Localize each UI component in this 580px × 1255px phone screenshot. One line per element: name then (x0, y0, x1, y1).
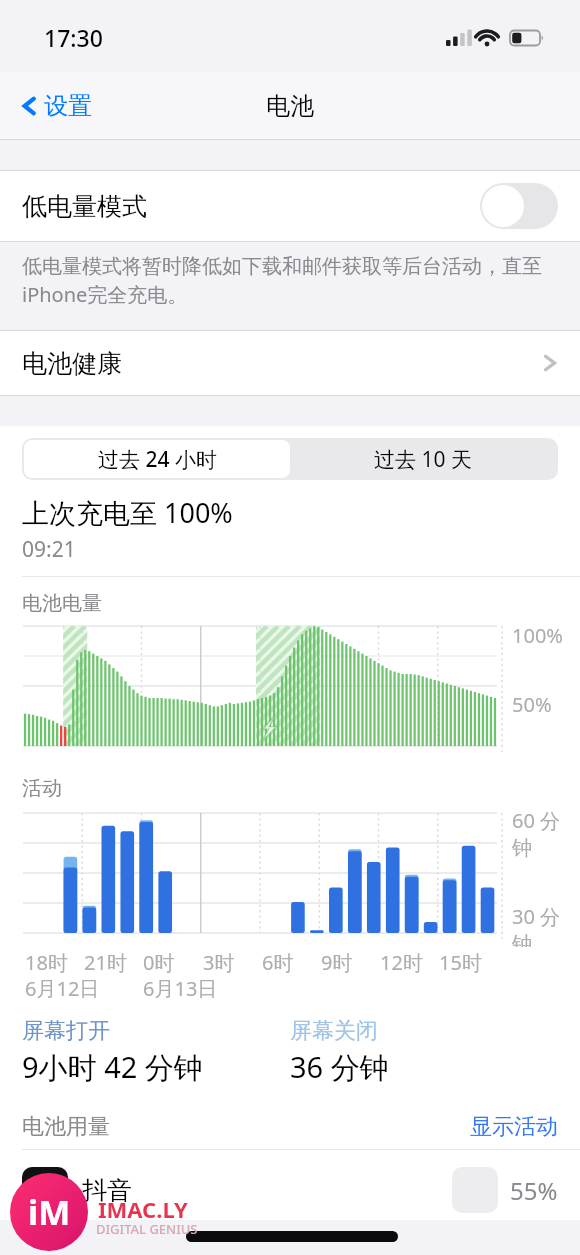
staticText: 电池用量 (22, 1113, 110, 1141)
staticText: 17:30 (44, 22, 103, 53)
staticText: 9小时 42 分钟 (22, 1047, 203, 1087)
staticText: 显示活动 (470, 1113, 558, 1141)
button[interactable]: 显示活动 (470, 1113, 558, 1141)
staticText: 21时 (84, 949, 127, 976)
staticText: 60 分钟 (512, 807, 580, 861)
staticText: 电池健康 (22, 348, 122, 379)
staticText: 09:21 (22, 535, 76, 564)
staticText: 低电量模式将暂时降低如下载和邮件获取等后台活动，直至 iPhone完全充电。 (22, 252, 546, 308)
button[interactable]: 电池健康 (0, 331, 580, 395)
staticText: 低电量模式 (22, 191, 147, 222)
staticText: 18时 (25, 949, 68, 976)
staticText: 过去 10 天 (374, 445, 472, 474)
staticText: 6时 (262, 949, 294, 976)
staticText: 上次充电至 100% (22, 494, 233, 531)
staticText: 抖音 (82, 1175, 132, 1206)
staticText: 6月12日 (25, 975, 100, 1002)
staticText: 6月13日 (143, 975, 218, 1002)
staticText: 55% (510, 1174, 558, 1207)
staticText: 12时 (380, 949, 423, 976)
staticText: 活动 (22, 776, 62, 801)
staticText: 100% (512, 622, 563, 649)
staticText: 屏幕关闭 (290, 1017, 378, 1045)
staticText: 9时 (321, 949, 353, 976)
staticText: 30 分钟 (512, 903, 580, 947)
button[interactable]: 过去 10 天 (290, 440, 556, 478)
staticText: 3时 (203, 949, 235, 976)
staticText: 36 分钟 (290, 1047, 389, 1087)
staticText: 屏幕打开 (22, 1017, 110, 1045)
button[interactable]: 抖音 (22, 1160, 558, 1220)
staticText: 设置 (44, 91, 92, 121)
staticText: 过去 24 小时 (98, 445, 217, 474)
button[interactable]: 过去 24 小时 (24, 440, 290, 478)
staticText: 15时 (439, 949, 482, 976)
staticText: iM (28, 1189, 71, 1235)
staticText: 电池电量 (22, 591, 102, 616)
staticText: 0时 (143, 949, 175, 976)
staticText: 电池 (266, 91, 314, 121)
button[interactable]: 低电量模式 (0, 171, 580, 241)
button[interactable]: 设置 (14, 72, 275, 140)
button[interactable]: 低电量模式开关 (480, 183, 558, 229)
staticText: 50% (512, 691, 552, 718)
staticText: IMAC.LY (98, 1194, 188, 1224)
staticText: DIGITAL GENIUS (96, 1220, 198, 1238)
